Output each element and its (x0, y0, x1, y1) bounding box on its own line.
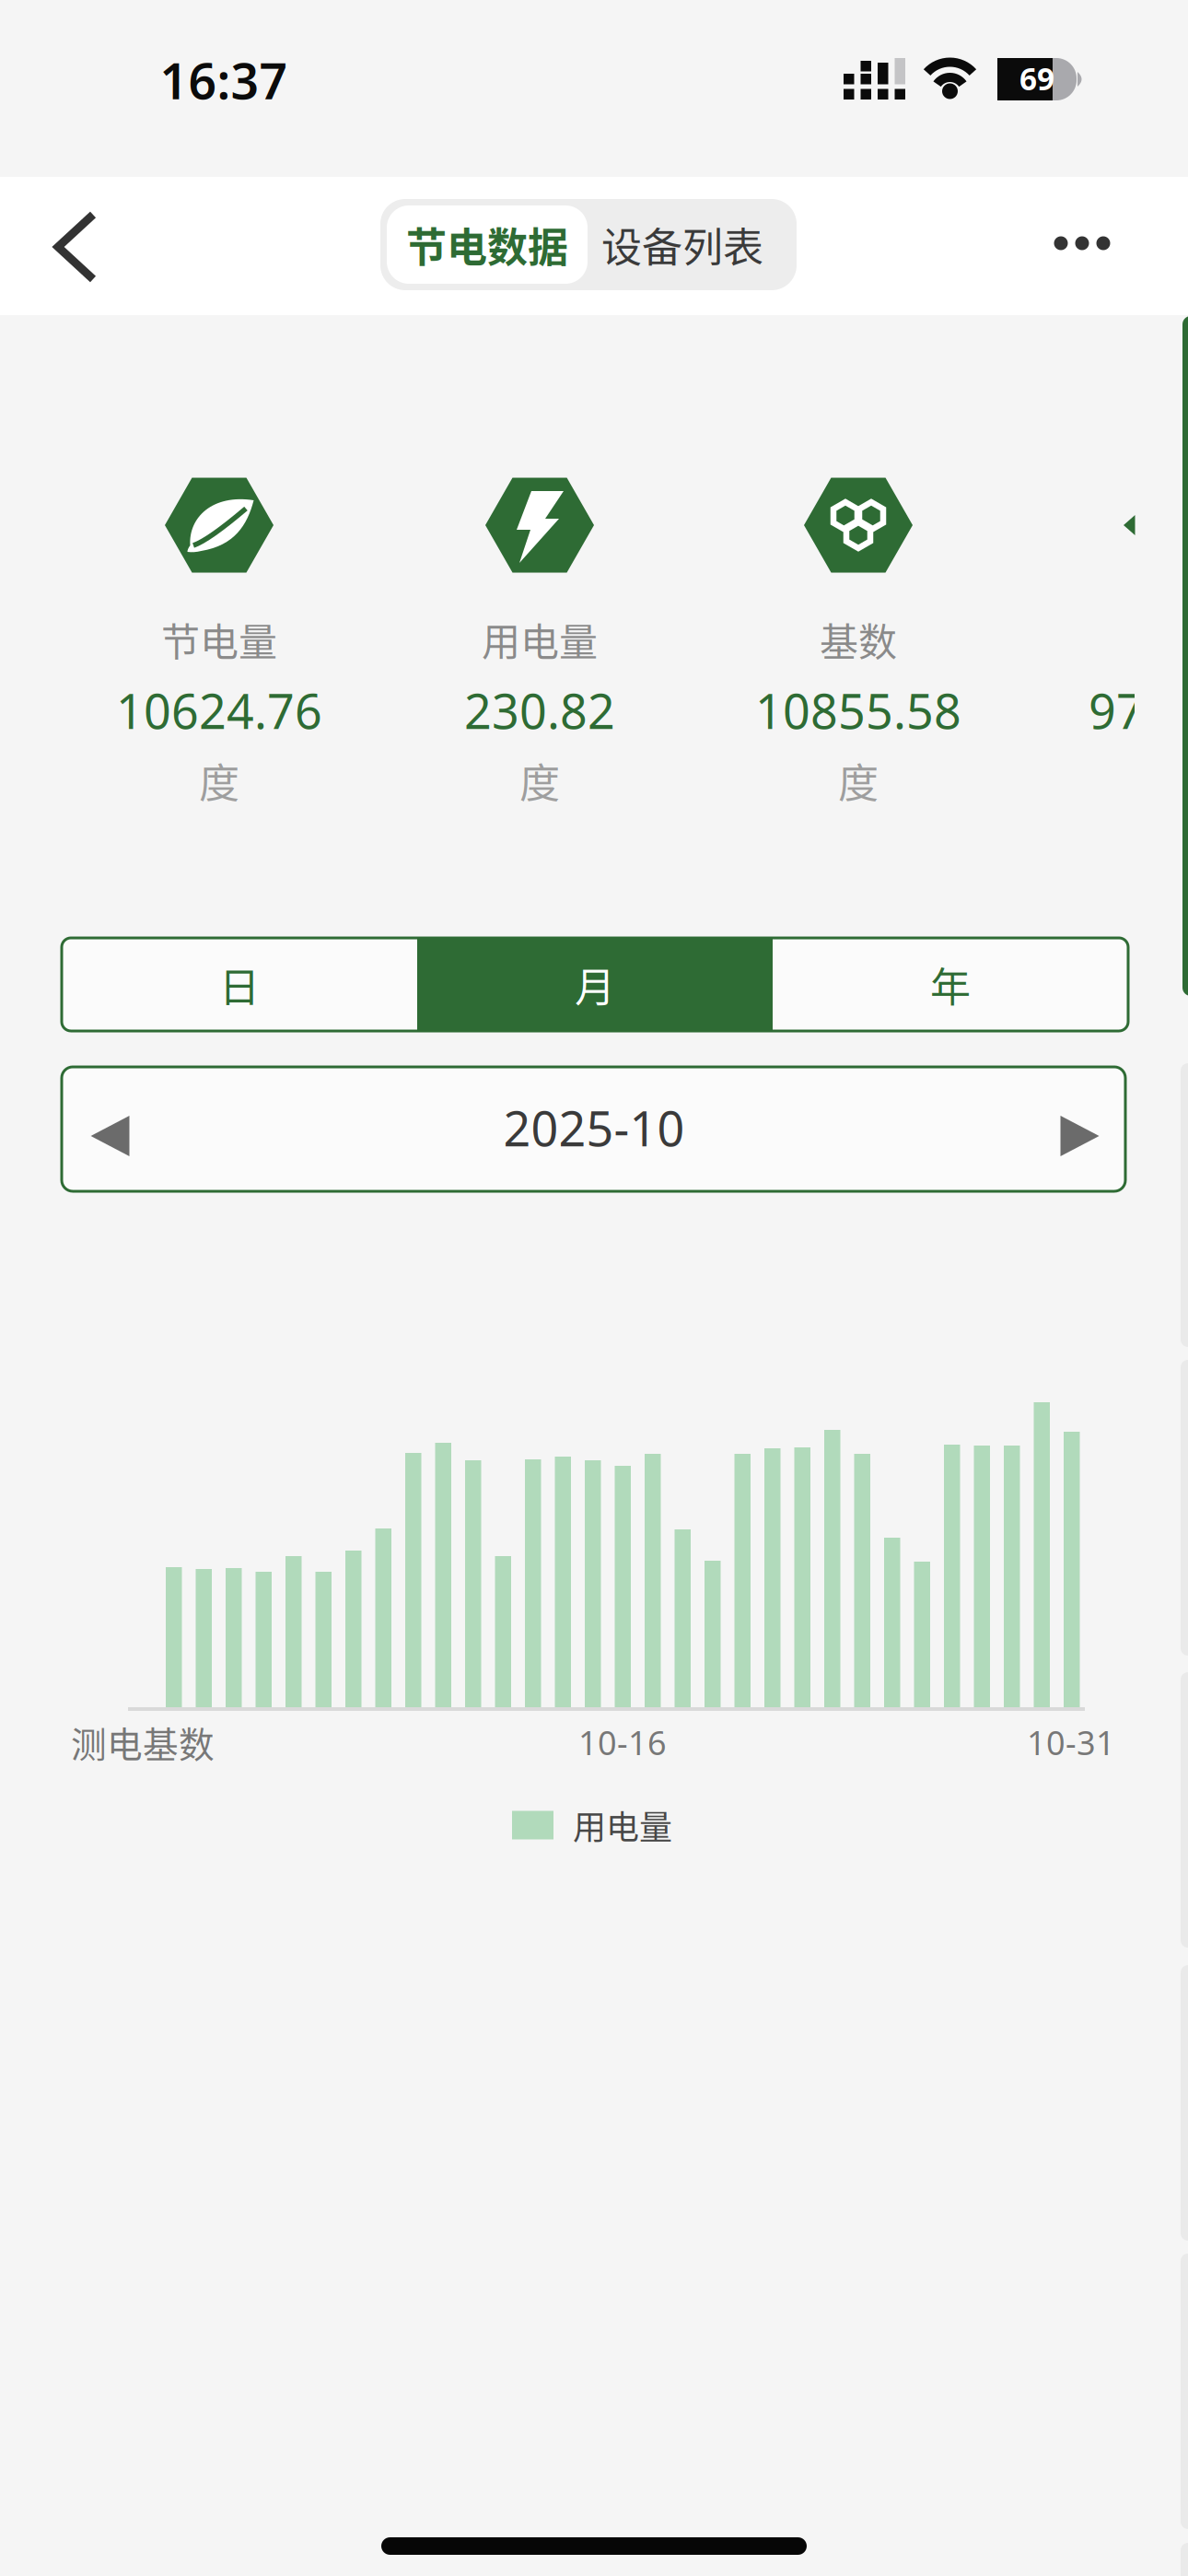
staticText: 度 (519, 751, 560, 810)
staticText: 2025-10 (503, 1096, 685, 1160)
button[interactable]: 月 (417, 938, 773, 1031)
staticText: 230.82 (464, 679, 615, 742)
staticText: 度 (838, 751, 879, 810)
staticText: 基数 (820, 611, 897, 667)
staticText: 10624.76 (116, 679, 322, 742)
staticText: 10-16 (578, 1720, 667, 1764)
staticText: 10855.58 (755, 679, 961, 742)
button[interactable]: 日 (62, 938, 417, 1031)
staticText: 日 (219, 955, 260, 1014)
staticText: 16:37 (160, 48, 288, 113)
staticText: 年 (930, 955, 971, 1014)
staticText: 97 (1089, 679, 1144, 742)
staticText: 69 (1019, 58, 1054, 99)
button[interactable]: Back (57, 215, 94, 279)
button[interactable]: 节电数据 (387, 205, 588, 284)
staticText: 10-31 (1027, 1720, 1115, 1764)
staticText: 月 (575, 955, 615, 1014)
staticText: 度 (199, 751, 239, 810)
staticText: 测电基数 (71, 1716, 215, 1768)
staticText: 节电量 (161, 611, 277, 667)
staticText: 节电数据 (406, 215, 568, 274)
button[interactable]: 设备列表 (586, 205, 779, 284)
staticText: 用电量 (573, 1801, 672, 1849)
button[interactable]: Next month (1060, 1116, 1099, 1156)
button[interactable]: More (1036, 206, 1128, 280)
staticText: 设备列表 (601, 215, 763, 274)
button[interactable]: Previous month (91, 1116, 129, 1156)
button[interactable]: 年 (773, 938, 1128, 1031)
staticText: 用电量 (482, 611, 598, 667)
